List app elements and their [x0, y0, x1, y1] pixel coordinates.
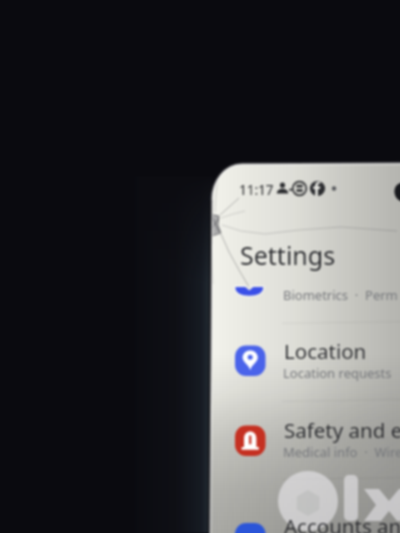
button[interactable]: [212, 323, 400, 400]
button[interactable]: [212, 479, 400, 533]
button[interactable]: [212, 401, 400, 478]
button[interactable]: Security and privacy: [212, 258, 400, 322]
